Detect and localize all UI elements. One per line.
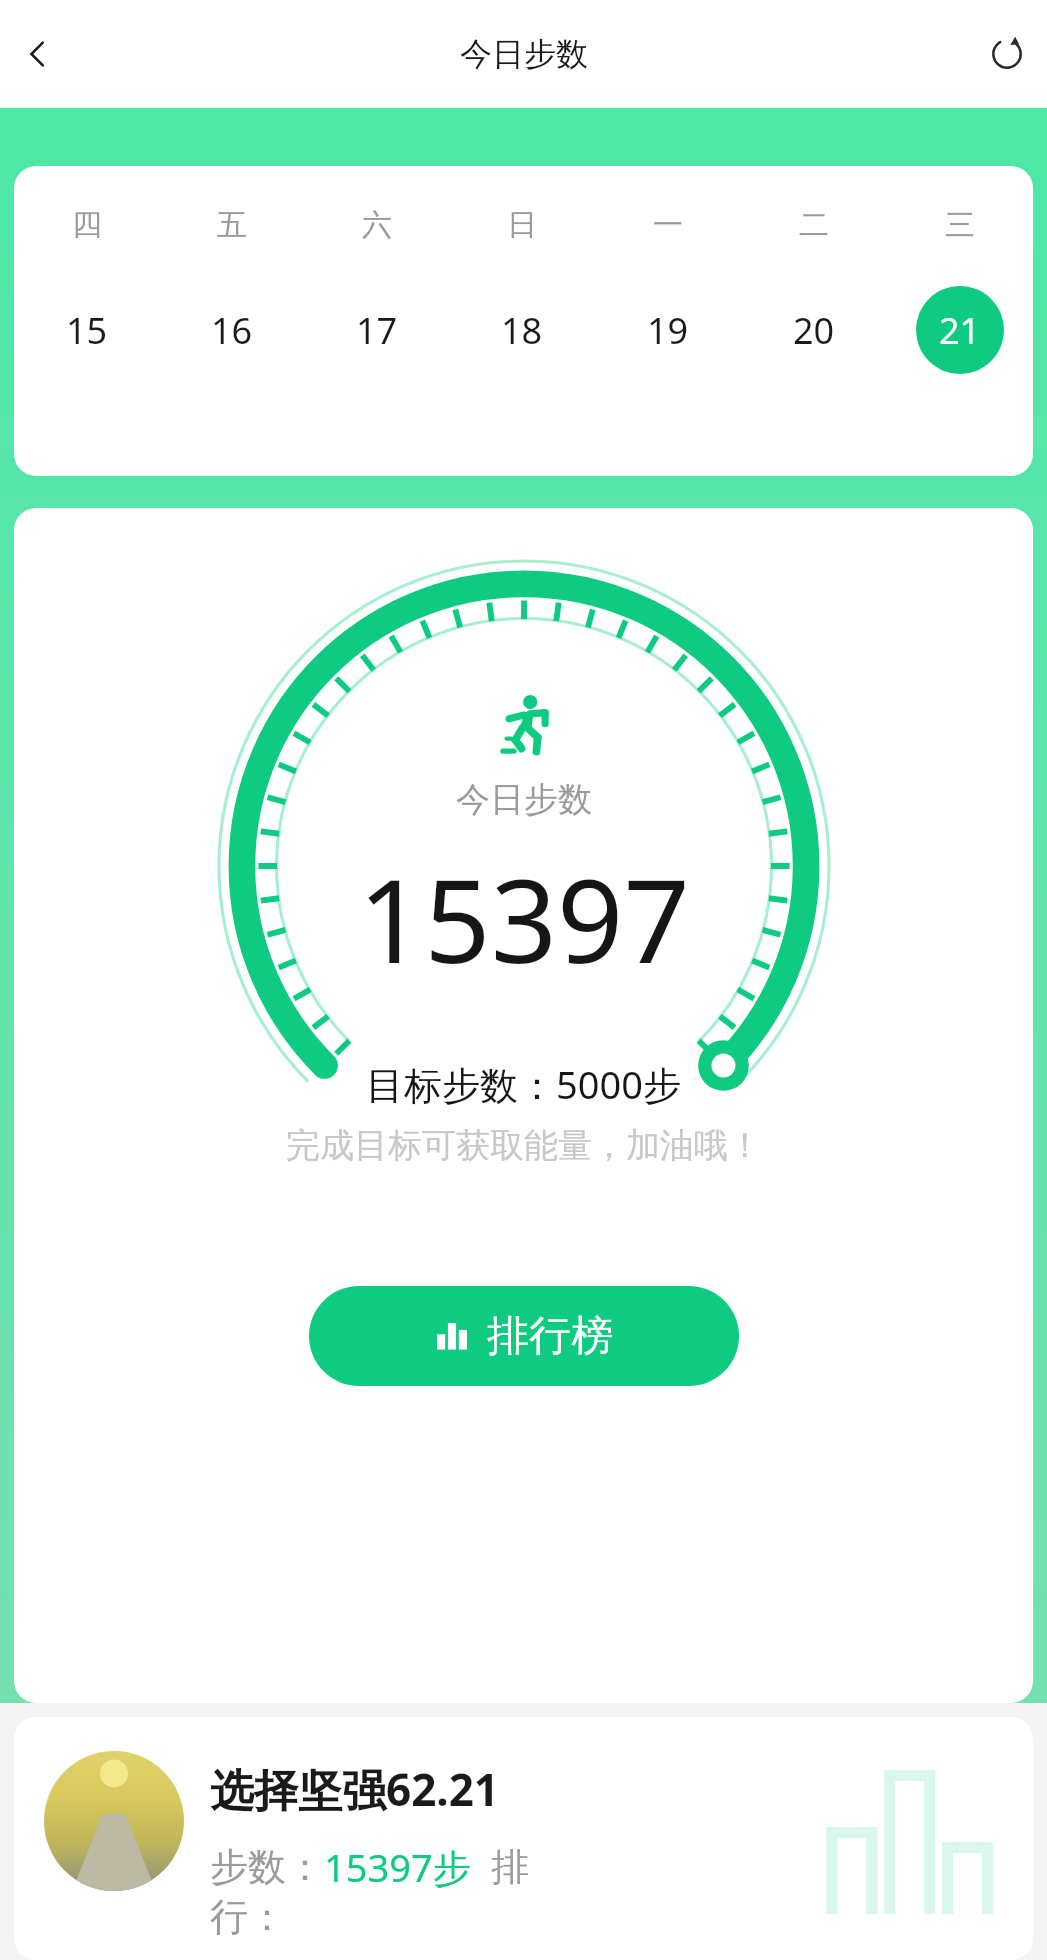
staticText: 15: [66, 306, 108, 355]
staticText: 二: [799, 206, 829, 244]
staticText: 六: [362, 206, 392, 244]
button[interactable]: 18: [449, 286, 595, 374]
button[interactable]: 19: [595, 286, 741, 374]
staticText: 17: [356, 306, 398, 355]
staticText: 15397步: [324, 1841, 471, 1893]
staticText: 21: [939, 306, 981, 355]
staticText: 20: [793, 306, 835, 355]
button[interactable]: 20: [741, 286, 887, 374]
staticText: 今日步数: [456, 778, 592, 821]
staticText: 步数：: [210, 1843, 324, 1891]
staticText: 18: [501, 306, 543, 355]
staticText: 今日步数: [460, 34, 588, 74]
staticText: 完成目标可获取能量，加油哦！: [286, 1124, 762, 1167]
button[interactable]: 17: [304, 286, 449, 374]
staticText: 三: [945, 206, 975, 244]
button[interactable]: 21: [887, 286, 1033, 374]
staticText: 五: [217, 206, 247, 244]
button[interactable]: 排行榜: [309, 1286, 739, 1386]
staticText: 目标步数：5000步: [366, 1058, 681, 1110]
staticText: 日: [507, 206, 537, 244]
staticText: 15397: [358, 839, 690, 997]
button[interactable]: Refresh: [977, 24, 1037, 84]
staticText: 一: [653, 206, 683, 244]
staticText: 四: [72, 206, 102, 244]
staticText: 排: [491, 1843, 529, 1891]
staticText: 19: [647, 306, 689, 355]
staticText: 16: [211, 306, 253, 355]
staticText: 选择坚强62.21: [210, 1759, 500, 1819]
staticText: 排行榜: [487, 1310, 613, 1363]
button[interactable]: 选择坚强62.21: [14, 1717, 1033, 1960]
button[interactable]: 16: [159, 286, 304, 374]
button[interactable]: Back: [8, 24, 68, 84]
button[interactable]: 15: [14, 286, 159, 374]
staticText: 行：: [210, 1893, 286, 1941]
